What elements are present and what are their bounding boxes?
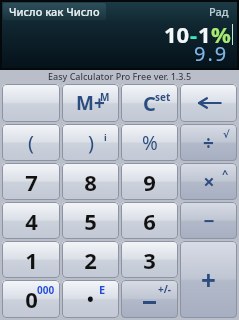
staticText: - — [190, 19, 198, 49]
staticText: 9 — [143, 167, 156, 197]
staticText: Easy Calculator Pro Free ver. 1.3.5 — [48, 70, 192, 82]
staticText: 2 — [84, 245, 97, 275]
staticText: set — [155, 90, 171, 104]
button[interactable]: M+ — [62, 84, 119, 122]
staticText: % — [211, 19, 231, 49]
button[interactable]: Minus — [180, 202, 237, 239]
button[interactable]: Plus — [180, 241, 237, 318]
staticText: 9.9 — [194, 40, 229, 67]
staticText: 1 — [198, 19, 211, 49]
staticText: 5 — [84, 206, 97, 236]
staticText: • — [87, 287, 94, 312]
staticText: + — [201, 262, 216, 297]
button[interactable]: • — [62, 280, 119, 318]
staticText: √ — [223, 129, 230, 141]
staticText: ) — [88, 129, 94, 156]
button[interactable]: Memory — [2, 84, 60, 122]
button[interactable]: ( — [2, 124, 60, 161]
staticText: Число как Число — [9, 4, 100, 19]
staticText: C — [143, 90, 156, 117]
button[interactable]: Backspace — [180, 84, 237, 122]
button[interactable]: Multiply — [180, 163, 237, 200]
button[interactable]: 5 — [62, 202, 119, 239]
staticText: ÷ — [203, 130, 214, 156]
button[interactable]: 4 — [2, 202, 60, 239]
button[interactable]: ) — [62, 124, 119, 161]
staticText: 4 — [25, 206, 38, 236]
staticText: 8 — [84, 167, 97, 197]
button[interactable]: % — [121, 124, 178, 161]
staticText: M+ — [76, 90, 105, 116]
staticText: 0 — [25, 284, 38, 314]
staticText: M — [100, 90, 110, 104]
button[interactable]: 0 — [2, 280, 60, 318]
button[interactable]: C — [121, 84, 178, 122]
button[interactable]: Plus minus — [121, 280, 178, 318]
staticText: +/- — [158, 282, 172, 296]
staticText: ^ — [222, 166, 229, 181]
button[interactable]: 9 — [121, 163, 178, 200]
staticText: 000 — [37, 283, 55, 297]
staticText: 10 — [164, 19, 190, 49]
staticText: − — [203, 208, 215, 234]
button[interactable]: 7 — [2, 163, 60, 200]
staticText: ( — [28, 129, 34, 156]
staticText: % — [142, 130, 158, 156]
staticText: i — [104, 131, 107, 143]
button[interactable]: 1 — [2, 241, 60, 278]
staticText: × — [203, 168, 215, 195]
button[interactable]: 2 — [62, 241, 119, 278]
button[interactable]: 6 — [121, 202, 178, 239]
button[interactable]: 8 — [62, 163, 119, 200]
staticText: Рад — [209, 4, 229, 19]
staticText: E — [99, 282, 106, 297]
staticText: 1 — [25, 245, 38, 275]
staticText: 7 — [25, 167, 38, 197]
staticText: 6 — [143, 206, 156, 236]
button[interactable]: 3 — [121, 241, 178, 278]
button[interactable]: Divide — [180, 124, 237, 161]
staticText: 3 — [143, 245, 156, 275]
